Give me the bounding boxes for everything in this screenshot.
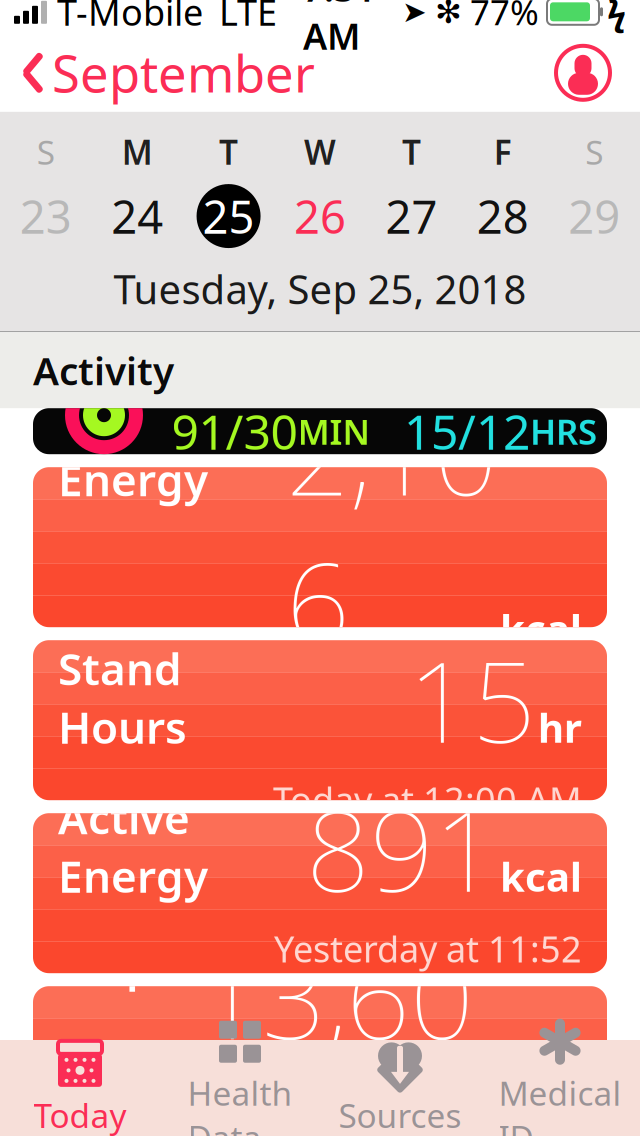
staticText: 29 bbox=[568, 186, 620, 246]
button[interactable]: 27 bbox=[366, 182, 457, 250]
staticText: Sources bbox=[338, 1093, 461, 1136]
staticText: 15 bbox=[408, 625, 536, 774]
button[interactable]: 25 bbox=[183, 182, 274, 250]
button[interactable]: Health Data bbox=[160, 1040, 320, 1136]
staticText: 2,106 bbox=[286, 378, 498, 675]
staticText: LTE bbox=[219, 0, 277, 36]
staticText: Steps bbox=[58, 935, 176, 994]
staticText: 15/12 bbox=[404, 399, 530, 463]
button[interactable]: 29 bbox=[549, 182, 640, 250]
button[interactable]: 23 bbox=[0, 182, 91, 250]
staticText: Today at 12:00 AM bbox=[273, 776, 582, 823]
staticText: hr bbox=[538, 701, 582, 754]
button[interactable]: 91/30 bbox=[33, 408, 607, 454]
staticText: HRS bbox=[530, 408, 597, 454]
button[interactable]: September bbox=[0, 31, 315, 114]
staticText: F bbox=[494, 130, 512, 174]
staticText: Stand Hours bbox=[58, 639, 187, 756]
staticText: T-Mobile bbox=[57, 0, 203, 36]
staticText: W bbox=[304, 130, 336, 174]
staticText: ϟ bbox=[607, 0, 626, 35]
staticText: 28 bbox=[477, 186, 529, 246]
staticText: ➤ bbox=[402, 0, 427, 28]
button[interactable]: Sources bbox=[320, 1040, 480, 1136]
button[interactable]: Stand Hours bbox=[33, 640, 607, 800]
staticText: kcal bbox=[500, 602, 582, 655]
staticText: 91/30 bbox=[171, 399, 297, 463]
staticText: 7:31 AM bbox=[303, 0, 376, 60]
staticText: Today at 12:07 AM bbox=[273, 677, 582, 725]
staticText: MIN bbox=[297, 408, 369, 454]
staticText: 891 bbox=[306, 774, 498, 923]
staticText: Medical ID bbox=[498, 1071, 621, 1136]
staticText: Today bbox=[33, 1093, 126, 1136]
staticText: 27 bbox=[385, 186, 437, 246]
staticText: 13,604 bbox=[198, 921, 474, 1136]
staticText: T bbox=[219, 130, 238, 174]
button[interactable]: Today bbox=[0, 1040, 160, 1136]
staticText: Activity bbox=[33, 344, 174, 396]
staticText: September bbox=[52, 39, 315, 106]
staticText: 24 bbox=[111, 186, 163, 246]
staticText: M bbox=[122, 130, 153, 174]
button[interactable]: 24 bbox=[91, 182, 183, 250]
staticText: Resting Energy bbox=[58, 392, 220, 508]
staticText: kcal bbox=[500, 850, 582, 903]
staticText: Tuesday, Sep 25, 2018 bbox=[113, 262, 526, 315]
staticText: Health Data bbox=[187, 1071, 292, 1136]
button[interactable]: Steps bbox=[33, 986, 607, 1136]
staticText: 26 bbox=[294, 186, 346, 246]
button[interactable]: Resting Energy bbox=[33, 467, 607, 627]
staticText: 25 bbox=[203, 186, 255, 246]
staticText: ✻ bbox=[435, 0, 462, 30]
staticText: Yesterday at 11:52 PM bbox=[274, 925, 582, 1020]
staticText: S bbox=[37, 130, 55, 174]
button[interactable]: Medical ID bbox=[480, 1040, 640, 1136]
button[interactable]: 26 bbox=[274, 182, 366, 250]
staticText: 77% bbox=[470, 0, 539, 35]
staticText: T bbox=[402, 130, 421, 174]
button[interactable]: Active Energy bbox=[33, 813, 607, 973]
button[interactable]: Profile bbox=[554, 44, 640, 102]
button[interactable]: 28 bbox=[457, 182, 548, 250]
staticText: S bbox=[585, 130, 603, 174]
staticText: Active Energy bbox=[58, 788, 208, 905]
staticText: 23 bbox=[20, 186, 72, 246]
